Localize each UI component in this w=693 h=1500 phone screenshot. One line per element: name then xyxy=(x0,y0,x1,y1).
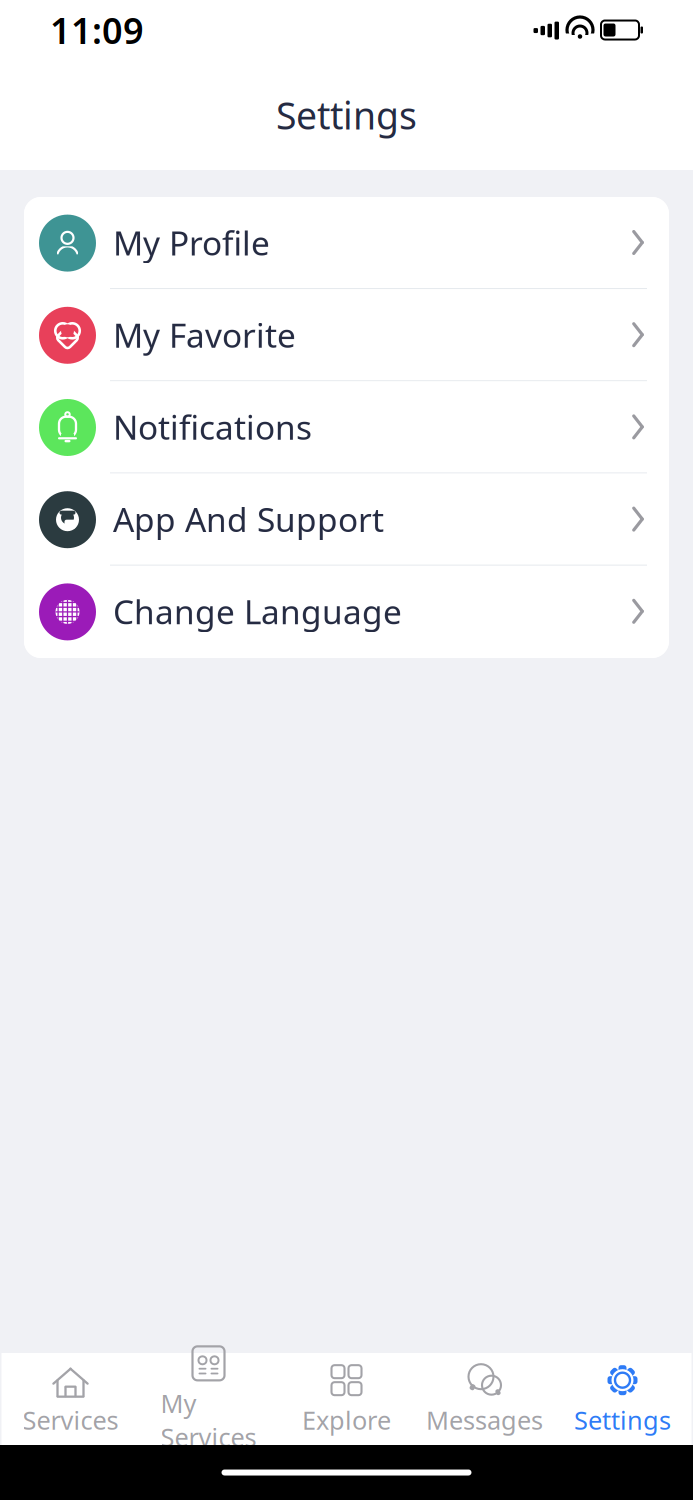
button[interactable]: My Profile xyxy=(24,197,669,289)
staticText: Change Language xyxy=(113,589,402,633)
staticText: My Profile xyxy=(113,220,270,265)
button[interactable]: Explore xyxy=(277,1359,415,1439)
staticText: My Favorite xyxy=(113,313,296,357)
staticText: App And Support xyxy=(113,497,384,541)
button[interactable]: Notifications xyxy=(24,381,669,474)
staticText: Settings xyxy=(276,90,417,140)
staticText: Services xyxy=(22,1403,118,1437)
staticText: Messages xyxy=(426,1403,543,1437)
staticText: Explore xyxy=(302,1403,391,1437)
button[interactable]: My Favorite xyxy=(24,289,669,381)
staticText: 11:09 xyxy=(50,6,144,54)
button[interactable]: Change Language xyxy=(24,566,669,658)
staticText: Notifications xyxy=(113,405,312,449)
button[interactable]: Settings xyxy=(553,1359,691,1439)
button[interactable]: My Services xyxy=(139,1359,277,1439)
staticText: Settings xyxy=(574,1403,671,1437)
staticText: My Services xyxy=(160,1386,256,1454)
button[interactable]: Messages xyxy=(415,1359,553,1439)
button[interactable]: App And Support xyxy=(24,474,669,566)
button[interactable]: Services xyxy=(1,1359,139,1439)
